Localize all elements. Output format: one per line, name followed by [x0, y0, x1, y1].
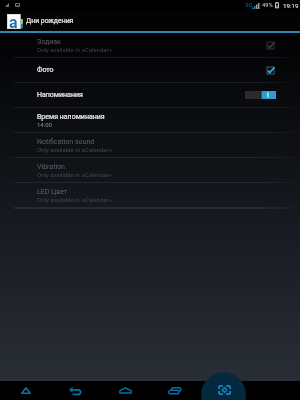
staticText: 3G — [245, 2, 253, 9]
staticText: a — [9, 13, 18, 28]
button[interactable]: Фото — [0, 58, 300, 82]
button[interactable]: Fullscreen — [207, 381, 243, 400]
button[interactable]: Reminders on — [243, 85, 276, 105]
staticText: Зодиак — [37, 38, 61, 46]
staticText: Время напоминания — [37, 113, 105, 121]
button[interactable]: Notification sound — [0, 133, 300, 157]
button[interactable]: Checked — [260, 60, 276, 80]
button[interactable]: Menu — [8, 381, 44, 400]
staticText: Notification sound — [37, 138, 95, 146]
button[interactable]: Unchecked — [260, 35, 276, 55]
staticText: LED Цвет — [37, 188, 68, 196]
staticText: 14:00 — [37, 121, 52, 128]
staticText: Фото — [37, 66, 54, 74]
staticText: Only available in aCalendar+ — [37, 146, 112, 153]
staticText: Дни рождения — [26, 17, 74, 25]
button[interactable]: Время напоминания — [0, 108, 300, 132]
button[interactable]: Напоминания — [0, 83, 300, 107]
button[interactable]: aCalendar app icon — [7, 14, 23, 29]
button[interactable]: Home — [107, 381, 143, 400]
button[interactable]: Зодиак — [0, 33, 300, 57]
button[interactable]: Back — [57, 381, 93, 400]
staticText: Vibration — [37, 163, 65, 171]
staticText: Only available in aCalendar+ — [37, 171, 112, 178]
staticText: Only available in aCalendar+ — [37, 196, 112, 203]
staticText: Only available in aCalendar+ — [37, 46, 112, 53]
button[interactable]: Vibration — [0, 158, 300, 182]
staticText: 49% — [262, 2, 273, 9]
button[interactable]: LED Цвет — [0, 183, 300, 207]
staticText: 19:19 — [283, 2, 299, 9]
staticText: Напоминания — [37, 91, 83, 99]
button[interactable]: Recents — [157, 381, 193, 400]
